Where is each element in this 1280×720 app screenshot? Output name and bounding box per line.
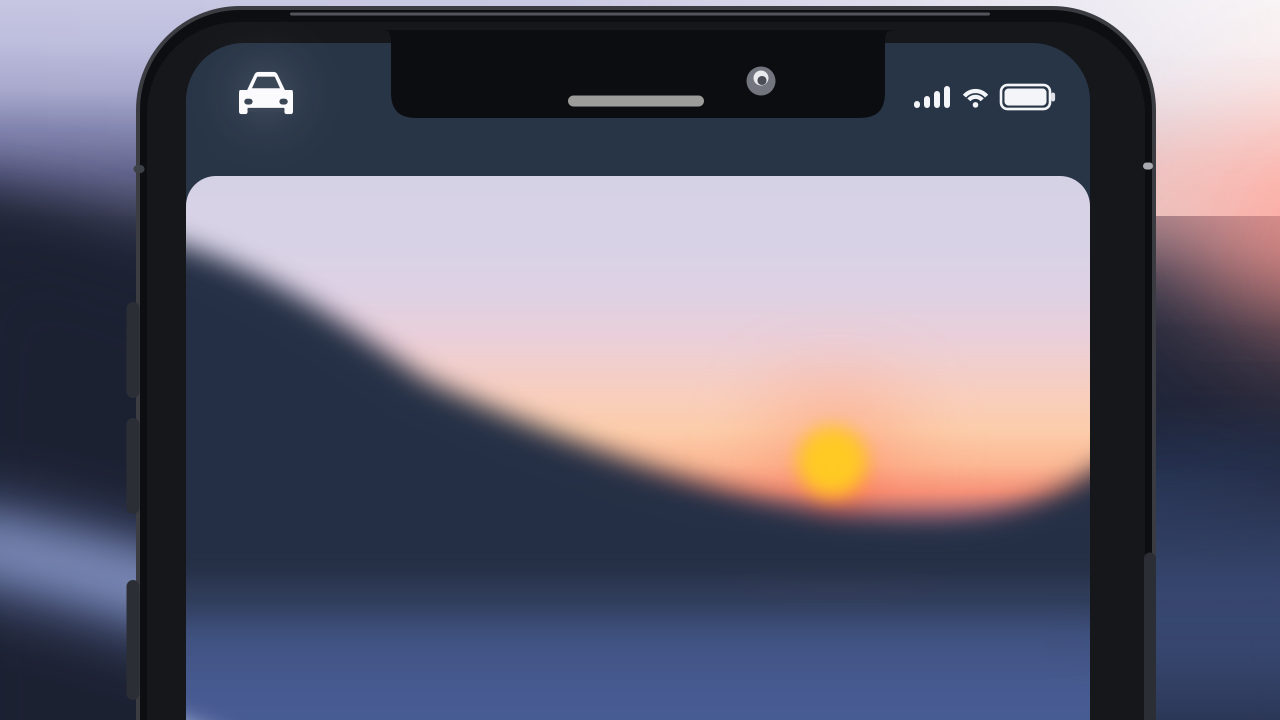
button[interactable]: Do Not Disturb While Driving: [230, 63, 302, 123]
